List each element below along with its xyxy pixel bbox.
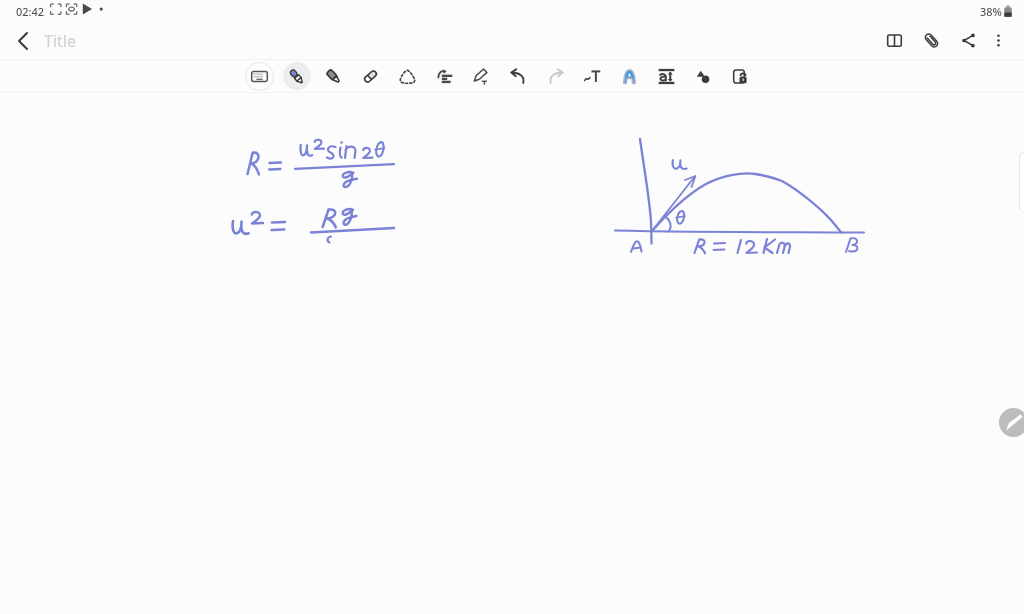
staticText: Title	[44, 30, 76, 52]
staticText: 02:42	[16, 4, 45, 19]
button[interactable]: Convert	[426, 60, 463, 92]
button[interactable]: Selection	[389, 60, 426, 92]
button[interactable]: Shapes	[685, 60, 722, 92]
staticText: 38%	[980, 4, 1002, 19]
button[interactable]: Auto shape	[611, 60, 648, 92]
button[interactable]: Attach	[913, 22, 950, 59]
button[interactable]: Highlighter	[315, 60, 352, 92]
button[interactable]: Eraser	[352, 60, 389, 92]
button[interactable]: Pen	[278, 60, 315, 92]
button[interactable]: Spacing	[648, 60, 685, 92]
button[interactable]: Pen to text	[463, 60, 500, 92]
button[interactable]: Share	[950, 22, 987, 59]
button[interactable]: Text	[574, 60, 611, 92]
button[interactable]: Undo	[500, 60, 537, 92]
button[interactable]: Lock	[722, 60, 759, 92]
button[interactable]: Pen settings	[999, 408, 1024, 437]
button[interactable]: Redo	[537, 60, 574, 92]
button[interactable]: More options	[980, 22, 1017, 59]
button[interactable]: Back	[6, 24, 40, 58]
button[interactable]: Reading view	[876, 22, 913, 59]
button[interactable]: Keyboard	[241, 60, 278, 92]
